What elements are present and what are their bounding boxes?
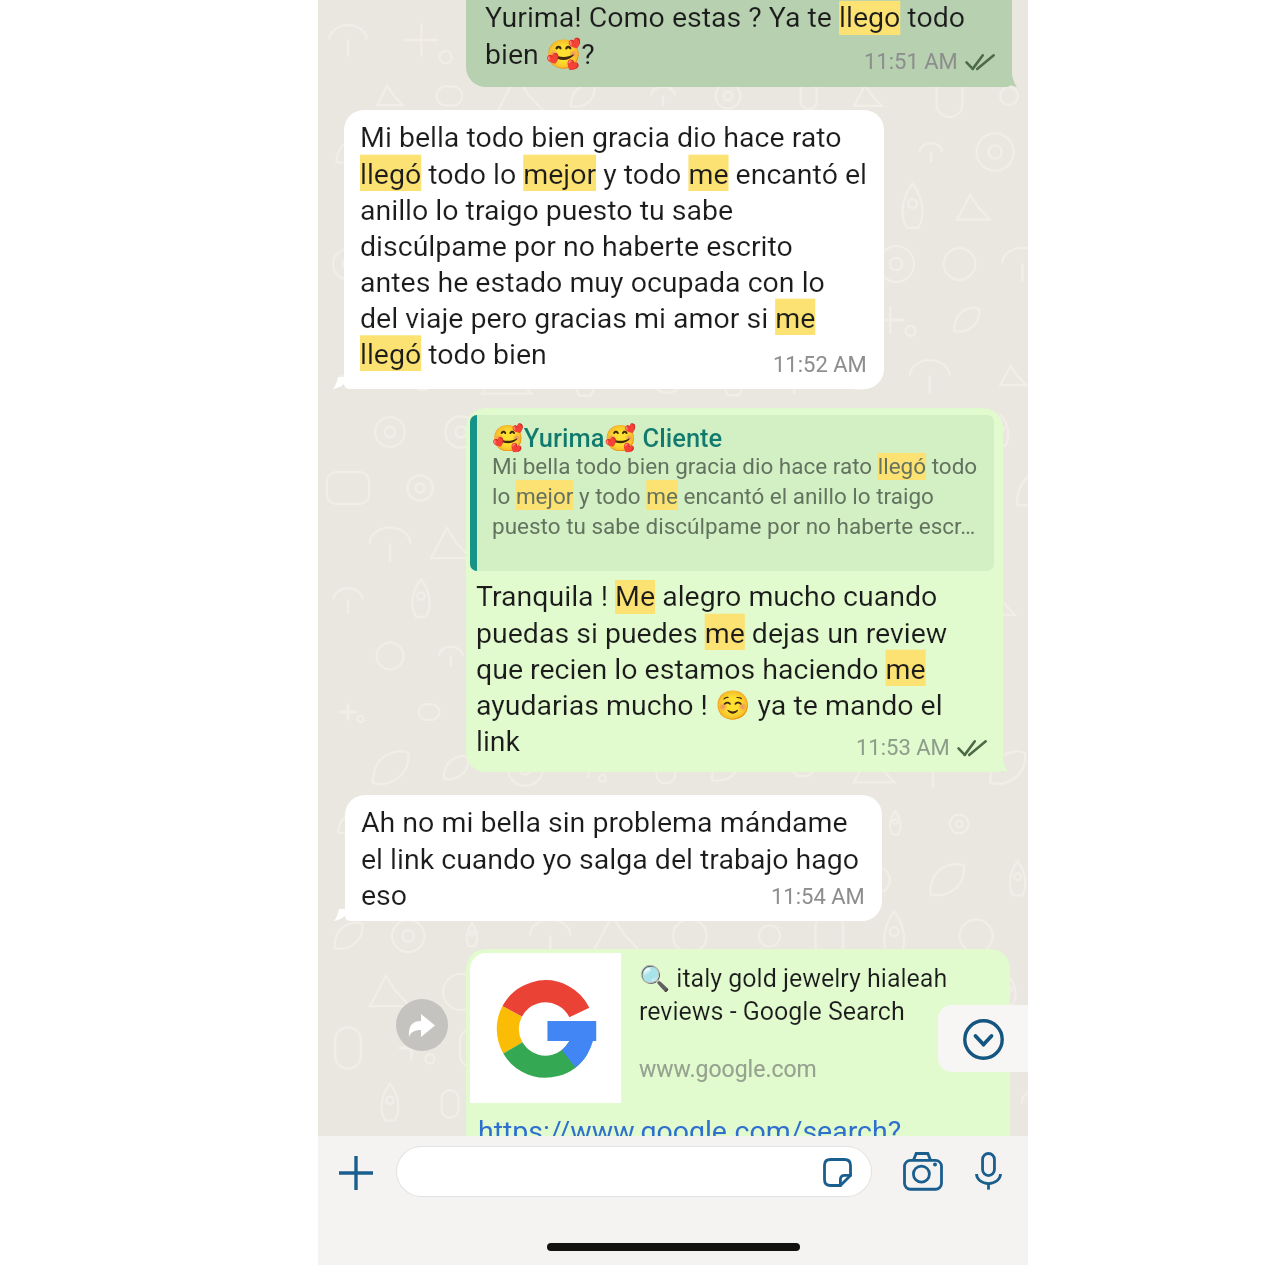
staticText: Ah no mi bella sin problema mándame el l… xyxy=(361,806,860,912)
staticText: Tranquila ! Me alegro mucho cuando pueda… xyxy=(476,580,948,758)
button[interactable]: 🥰Yurima🥰 Cliente xyxy=(466,408,1003,772)
button[interactable]: Ah no mi bella sin problema mándame el l… xyxy=(345,795,882,921)
button[interactable]: Yurima! Como estas ? Ya te llego todo bi… xyxy=(466,0,1012,87)
staticText: https://www.google.com/search? xyxy=(478,1115,902,1148)
staticText: 🔍 italy gold jewelry hialeah reviews - G… xyxy=(639,964,989,1026)
staticText: Mi bella todo bien gracia dio hace rato … xyxy=(360,121,868,371)
button[interactable]: Voice message xyxy=(968,1148,1008,1188)
staticText: 🥰Yurima🥰 Cliente xyxy=(492,423,723,453)
button[interactable]: Expand link xyxy=(938,1005,1028,1072)
staticText: Mi bella todo bien gracia dio hace rato … xyxy=(492,453,984,539)
button[interactable]: 🔍 italy gold jewelry hialeah reviews - G… xyxy=(466,949,1010,1265)
button[interactable]: Mi bella todo bien gracia dio hace rato … xyxy=(344,110,884,389)
button[interactable]: Attach xyxy=(335,1152,377,1194)
button[interactable]: Forward xyxy=(396,999,448,1051)
staticText: 11:52 AM xyxy=(773,352,867,378)
staticText: www.google.com xyxy=(639,1056,817,1083)
staticText: 11:53 AM xyxy=(856,735,950,761)
button[interactable]: Camera xyxy=(900,1148,946,1194)
button[interactable]: 🥰Yurima🥰 Cliente xyxy=(470,415,994,571)
button[interactable]: Stickers xyxy=(821,1155,855,1189)
staticText: Yurima! Como estas ? Ya te llego todo bi… xyxy=(485,1,965,71)
button[interactable] xyxy=(396,1146,872,1197)
staticText: 11:51 AM xyxy=(864,49,958,75)
staticText: 11:54 AM xyxy=(771,884,865,910)
